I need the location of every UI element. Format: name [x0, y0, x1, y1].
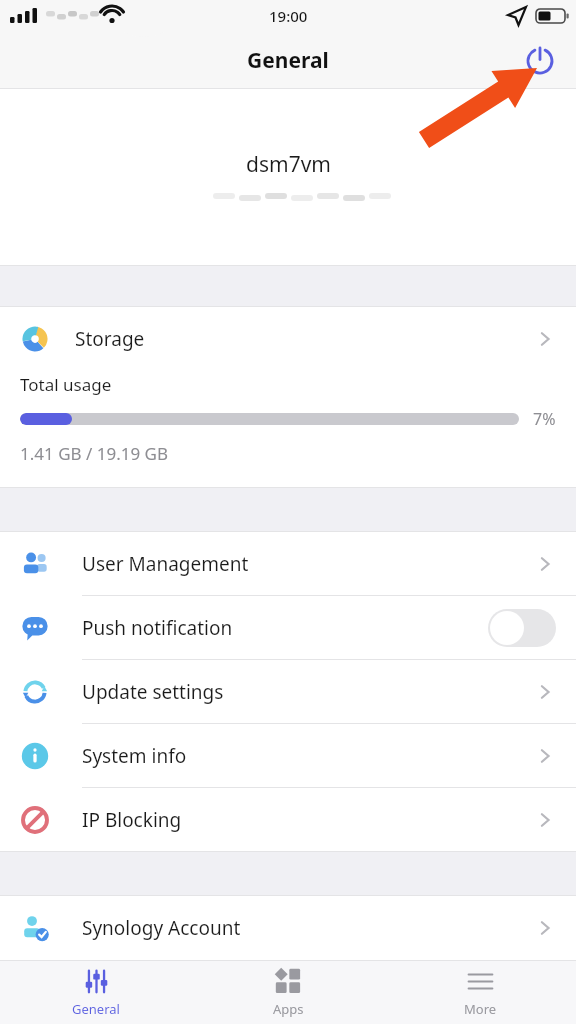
- staticText: Push notification: [82, 615, 233, 641]
- button[interactable]: General: [0, 961, 192, 1024]
- staticText: 19:00: [269, 6, 308, 26]
- button[interactable]: Push notification toggle: [488, 609, 556, 647]
- button[interactable]: IP Blocking: [0, 788, 576, 851]
- staticText: System info: [82, 743, 187, 769]
- staticText: Update settings: [82, 679, 224, 705]
- staticText: 7%: [533, 408, 556, 430]
- button[interactable]: System info: [0, 724, 576, 787]
- staticText: Synology Account: [82, 915, 241, 941]
- staticText: dsm7vm: [246, 150, 331, 179]
- staticText: More: [464, 1000, 497, 1018]
- button[interactable]: User Management: [0, 532, 576, 595]
- button[interactable]: Apps: [192, 961, 384, 1024]
- button[interactable]: More: [384, 961, 576, 1024]
- staticText: IP Blocking: [82, 807, 182, 833]
- button[interactable]: Storage: [0, 307, 576, 371]
- staticText: Total usage: [20, 373, 112, 396]
- button[interactable]: Power: [518, 39, 562, 83]
- button[interactable]: Synology Account: [0, 896, 576, 959]
- staticText: User Management: [82, 551, 249, 577]
- staticText: Apps: [273, 1000, 304, 1018]
- button[interactable]: Update settings: [0, 660, 576, 723]
- staticText: General: [247, 46, 329, 75]
- button[interactable]: Push notification: [0, 596, 576, 659]
- staticText: Storage: [75, 326, 145, 352]
- staticText: General: [72, 1000, 120, 1018]
- staticText: 1.41 GB / 19.19 GB: [20, 442, 169, 465]
